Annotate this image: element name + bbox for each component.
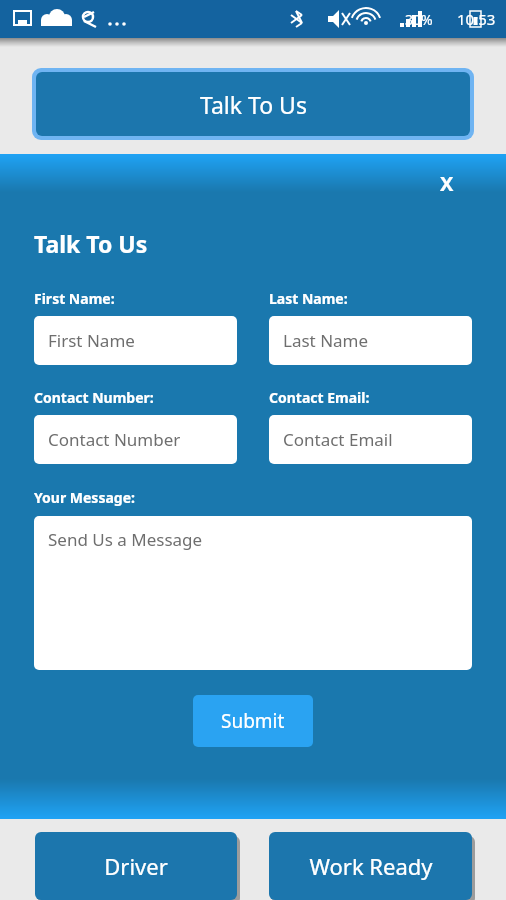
staticText: Send Us a Message bbox=[48, 528, 203, 551]
staticText: Submit bbox=[221, 708, 285, 734]
staticText: Your Message: bbox=[34, 488, 135, 507]
staticText: Driver bbox=[104, 851, 168, 881]
staticText: Contact Email bbox=[283, 428, 393, 451]
button[interactable]: Contact Number bbox=[34, 415, 237, 464]
staticText: Talk To Us bbox=[200, 89, 307, 120]
staticText: Contact Number: bbox=[34, 388, 154, 407]
staticText: Contact Number bbox=[48, 428, 181, 451]
staticText: Last Name: bbox=[269, 289, 348, 308]
staticText: Talk To Us bbox=[34, 228, 148, 259]
staticText: First Name: bbox=[34, 289, 115, 308]
button[interactable]: Contact Email bbox=[269, 415, 472, 464]
button[interactable]: Driver bbox=[35, 832, 237, 900]
staticText: Contact Email: bbox=[269, 388, 370, 407]
button[interactable]: Close bbox=[430, 166, 464, 200]
button[interactable]: Last Name bbox=[269, 316, 472, 365]
staticText: First Name bbox=[48, 329, 135, 352]
button[interactable]: First Name bbox=[34, 316, 237, 365]
staticText: 30% bbox=[405, 10, 433, 29]
button[interactable]: Talk To Us bbox=[32, 68, 474, 140]
staticText: 10:53 bbox=[457, 9, 496, 29]
staticText: Last Name bbox=[283, 329, 369, 352]
button[interactable]: Send Us a Message bbox=[34, 516, 472, 670]
staticText: Work Ready bbox=[309, 851, 433, 881]
staticText: X bbox=[440, 170, 454, 197]
button[interactable]: Work Ready bbox=[269, 832, 472, 900]
button[interactable]: Submit bbox=[193, 695, 313, 747]
